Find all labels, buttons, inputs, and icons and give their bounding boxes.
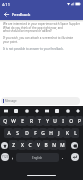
staticText: J — [58, 130, 60, 137]
button[interactable]: More — [74, 107, 81, 114]
button[interactable]: U — [51, 116, 59, 126]
button[interactable]: M — [58, 140, 66, 150]
staticText: , — [12, 154, 14, 160]
button[interactable]: Back — [0, 8, 12, 20]
staticText: It is not possible to answer to your fee… — [3, 47, 64, 51]
staticText: . — [62, 154, 64, 160]
staticText: H — [49, 130, 53, 137]
button[interactable]: Sticker — [23, 107, 30, 114]
staticText: Y — [46, 118, 49, 125]
button[interactable]: S — [13, 128, 22, 138]
button[interactable]: B — [42, 140, 50, 150]
staticText: W — [11, 118, 16, 125]
button[interactable]: Q — [0, 116, 9, 126]
button[interactable]: V — [34, 140, 42, 150]
button[interactable]: O — [67, 116, 75, 126]
button[interactable]: H — [47, 128, 55, 138]
button[interactable]: Settings — [64, 107, 71, 114]
staticText: X — [21, 142, 24, 149]
staticText: U — [53, 118, 57, 125]
staticText: R — [30, 118, 33, 125]
staticText: M — [60, 142, 65, 149]
staticText: Q — [3, 118, 7, 125]
staticText: Z — [12, 142, 15, 149]
button[interactable]: P — [75, 116, 83, 126]
staticText: T — [38, 118, 41, 125]
button[interactable]: Shift — [1, 142, 8, 149]
button[interactable]: W — [9, 116, 18, 126]
button[interactable]: L — [71, 128, 79, 138]
staticText: B — [44, 142, 48, 149]
button[interactable]: Translate — [43, 107, 50, 114]
button[interactable]: English — [16, 153, 59, 162]
button[interactable]: ?123 — [1, 153, 9, 161]
staticText: V — [37, 142, 40, 149]
button[interactable]: Y — [43, 116, 51, 126]
staticText: E — [21, 118, 24, 125]
button[interactable]: C — [26, 140, 34, 150]
staticText: O — [69, 118, 73, 125]
button[interactable]: Backspace — [71, 142, 78, 149]
button[interactable]: N — [50, 140, 58, 150]
staticText: P — [78, 118, 81, 125]
staticText: ?123 — [2, 155, 9, 159]
staticText: D — [25, 130, 29, 137]
staticText: N — [52, 142, 56, 149]
button[interactable]: Period — [59, 152, 66, 162]
button[interactable]: I — [59, 116, 67, 126]
staticText: I — [62, 118, 64, 125]
staticText: We are interested in your experience wit… — [3, 22, 80, 33]
button[interactable]: Voice — [53, 107, 60, 114]
button[interactable]: GIF — [12, 107, 19, 114]
button[interactable]: Message — [1, 97, 80, 105]
staticText: Feedback — [12, 12, 31, 17]
button[interactable]: D — [22, 128, 31, 138]
button[interactable]: Keyboard — [2, 107, 9, 114]
button[interactable]: F — [31, 128, 39, 138]
button[interactable]: K — [63, 128, 71, 138]
staticText: A — [7, 130, 11, 137]
button[interactable]: Search — [33, 107, 40, 114]
staticText: 4:11 — [2, 2, 10, 7]
button[interactable]: R — [27, 116, 35, 126]
staticText: F — [34, 130, 37, 137]
staticText: G — [41, 130, 45, 137]
button[interactable]: A — [4, 128, 13, 138]
staticText: C — [28, 142, 32, 149]
staticText: S — [16, 130, 19, 137]
staticText: K — [66, 130, 69, 137]
button[interactable]: X — [18, 140, 26, 150]
staticText: Message — [5, 99, 17, 103]
staticText: If you wish, you can attach a screenshot… — [3, 36, 74, 44]
staticText: English — [32, 156, 43, 160]
button[interactable]: T — [35, 116, 43, 126]
button[interactable]: Z — [9, 140, 18, 150]
button[interactable]: J — [55, 128, 63, 138]
staticText: L — [74, 130, 77, 137]
button[interactable]: G — [39, 128, 47, 138]
button[interactable]: Comma — [9, 152, 16, 162]
button[interactable]: E — [18, 116, 27, 126]
button[interactable]: Enter — [71, 153, 79, 161]
